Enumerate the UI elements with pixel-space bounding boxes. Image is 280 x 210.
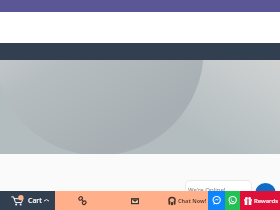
staticText: We're Online! — [188, 186, 226, 194]
staticText: Cart — [28, 196, 42, 206]
button[interactable]: Open chat — [255, 183, 276, 204]
button[interactable]: We're Online! — [185, 180, 252, 194]
button[interactable]: WhatsApp — [225, 191, 240, 210]
button[interactable]: Email us — [109, 191, 160, 210]
button[interactable]: Cart — [0, 191, 55, 210]
staticText: Chat Now! — [178, 197, 207, 204]
button[interactable]: Chat Now! — [160, 191, 208, 210]
button[interactable]: Rewards — [240, 191, 280, 210]
button[interactable]: Messenger — [208, 191, 225, 210]
staticText: Rewards — [254, 197, 279, 205]
button[interactable]: Call us — [55, 191, 109, 210]
